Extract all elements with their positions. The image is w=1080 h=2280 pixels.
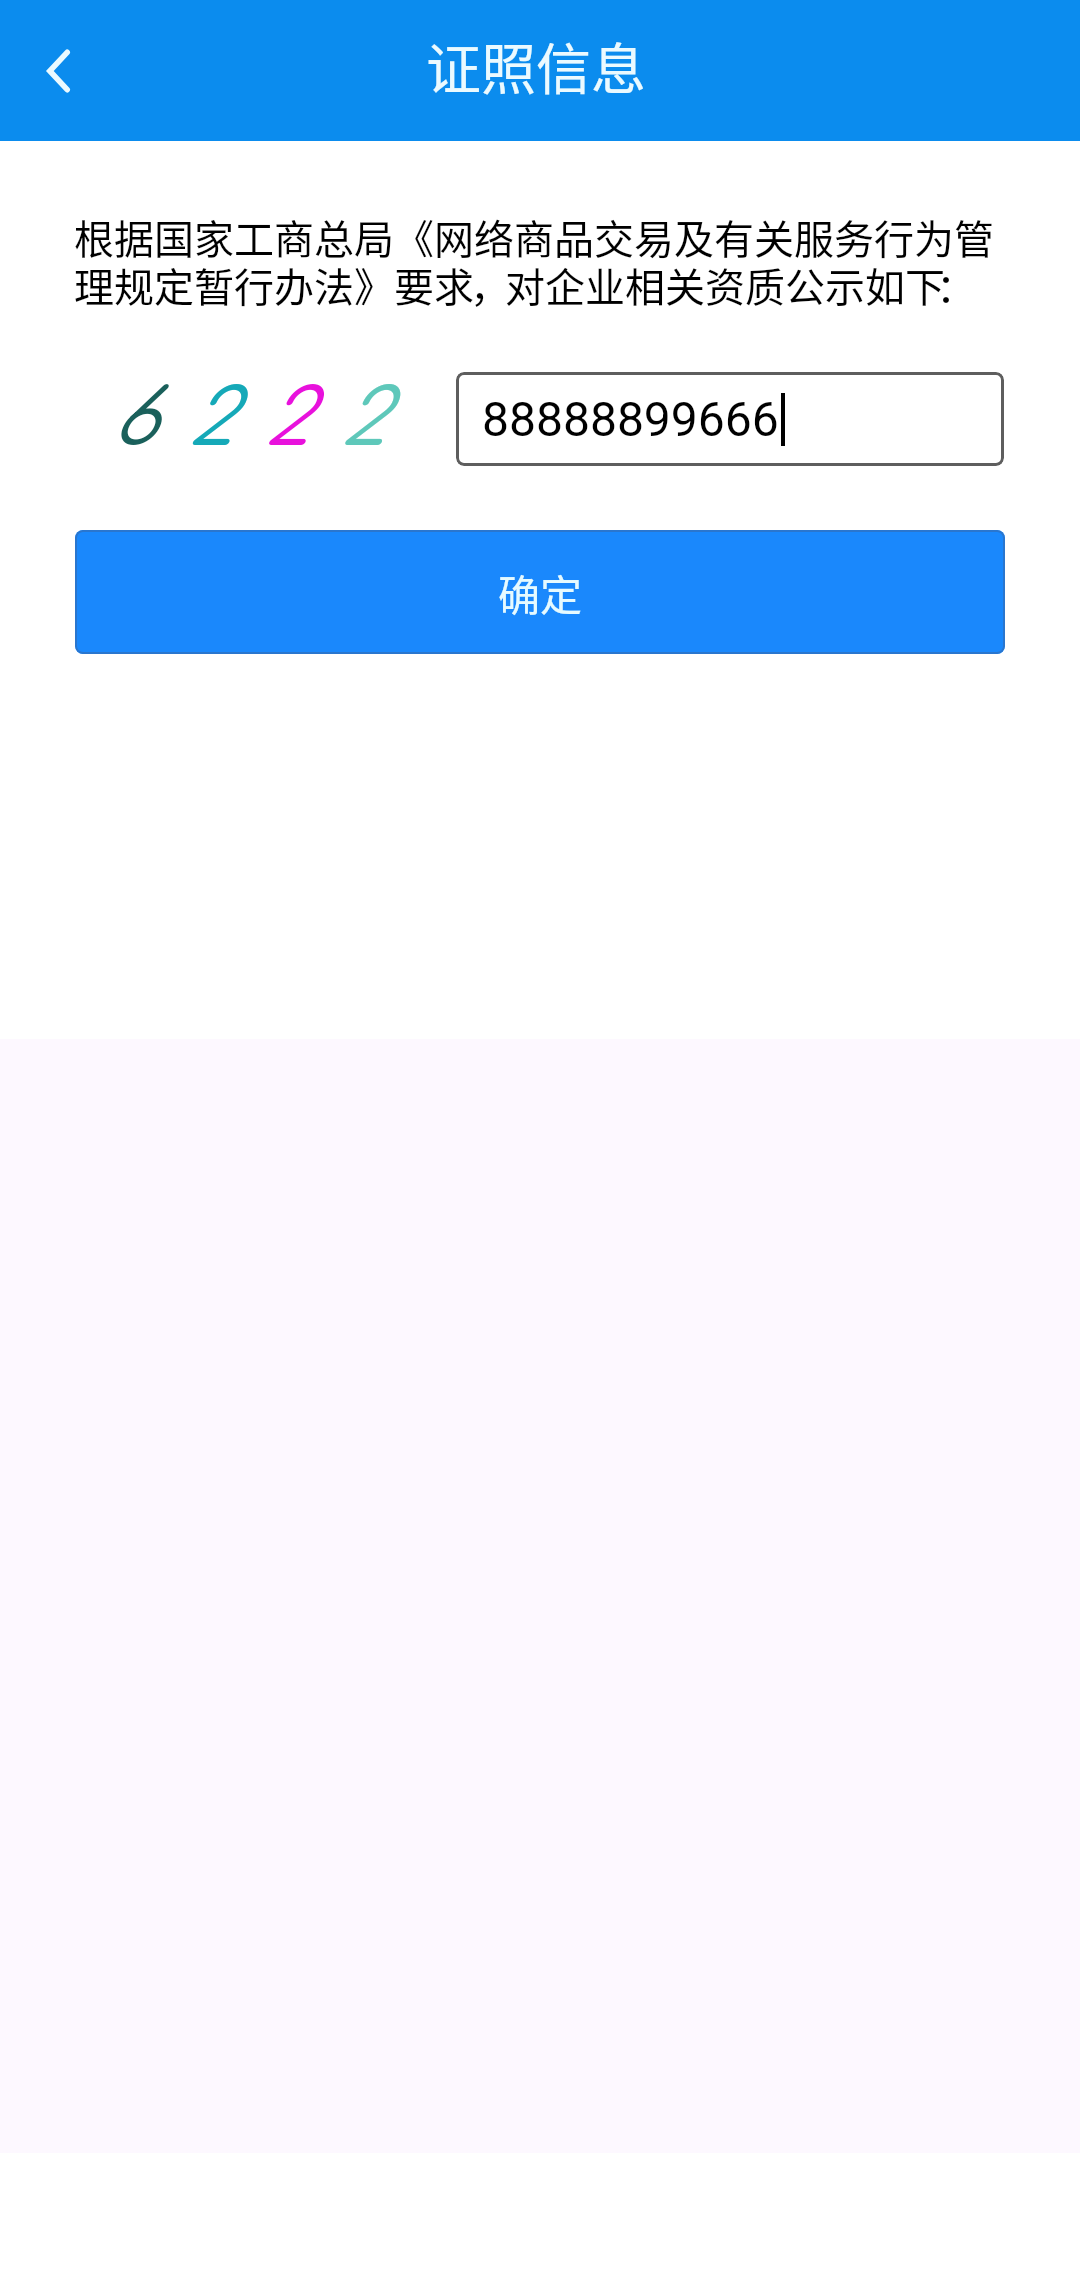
staticText: 证照信息 — [426, 25, 647, 105]
staticText: 88888899666 — [482, 391, 779, 447]
staticText: 确定 — [498, 562, 583, 623]
staticText: 根据国家工商总局《网络商品交易及有关服务行为管理规定暂行办法》要求，对企业相关资… — [74, 208, 1006, 314]
button[interactable]: Back — [0, 12, 118, 130]
button[interactable]: 6222 — [110, 376, 416, 463]
button[interactable]: 确定 — [75, 530, 1005, 654]
button[interactable]: 88888899666 — [456, 372, 1004, 466]
